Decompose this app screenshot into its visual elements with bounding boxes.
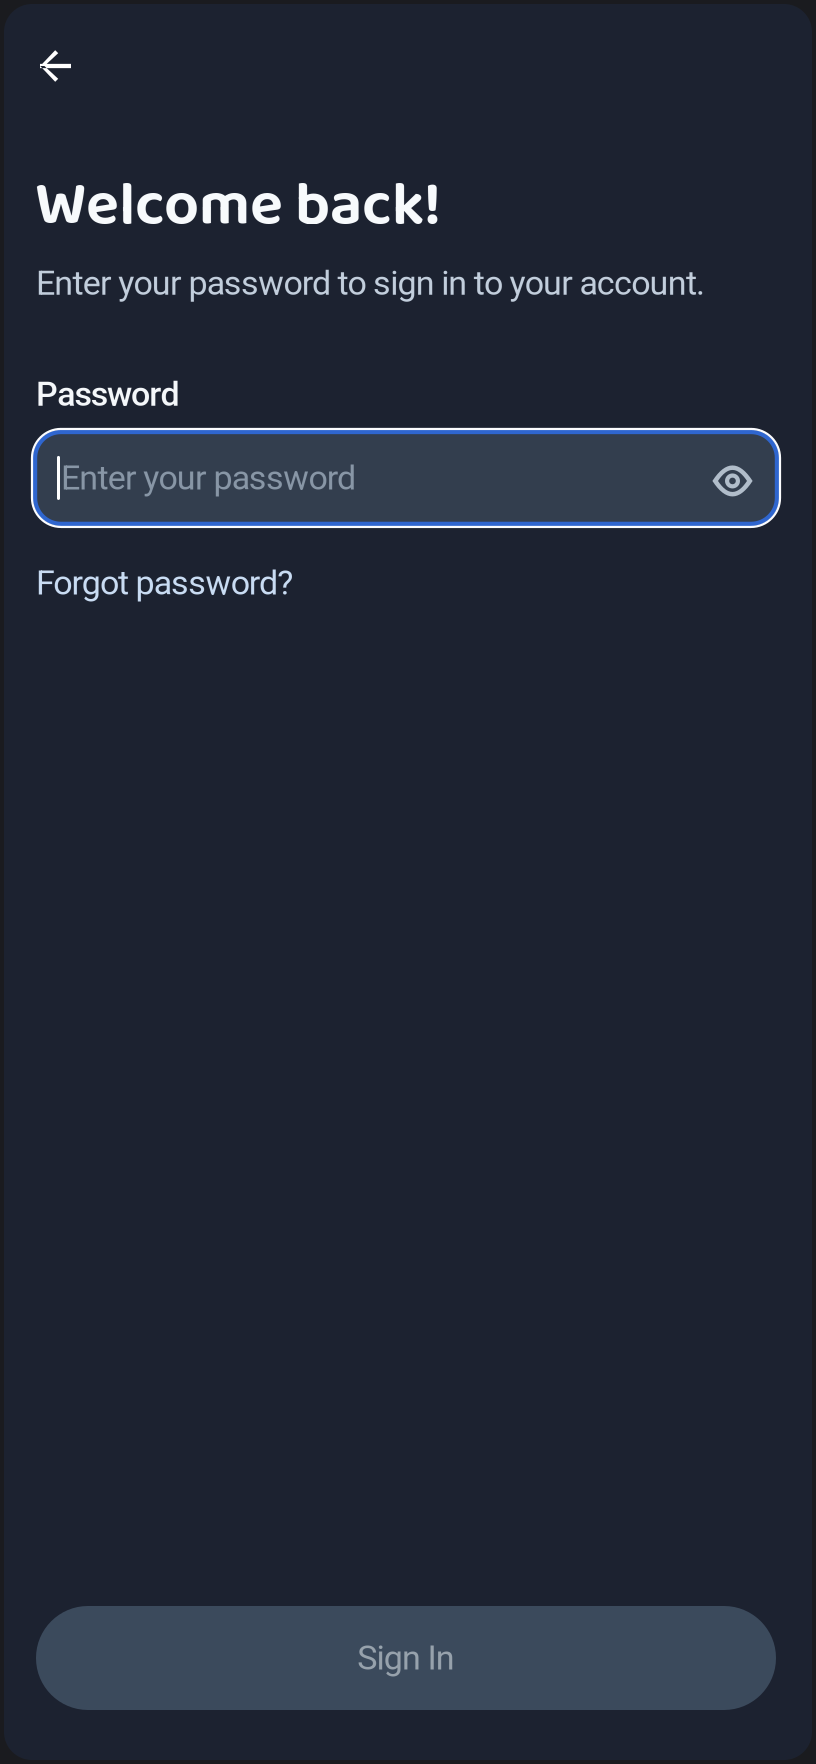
staticText: Enter your password [61, 458, 356, 498]
staticText: Sign In [357, 1638, 455, 1678]
button[interactable]: Sign In [36, 1606, 776, 1710]
staticText: Welcome back! [35, 157, 441, 255]
staticText: Forgot password? [36, 563, 293, 603]
staticText: Enter your password to sign in to your a… [36, 263, 705, 303]
button[interactable]: Forgot password? [4, 527, 307, 615]
button[interactable]: Back [4, 4, 99, 110]
staticText: Password [36, 374, 179, 414]
button[interactable]: Show password [700, 450, 756, 505]
